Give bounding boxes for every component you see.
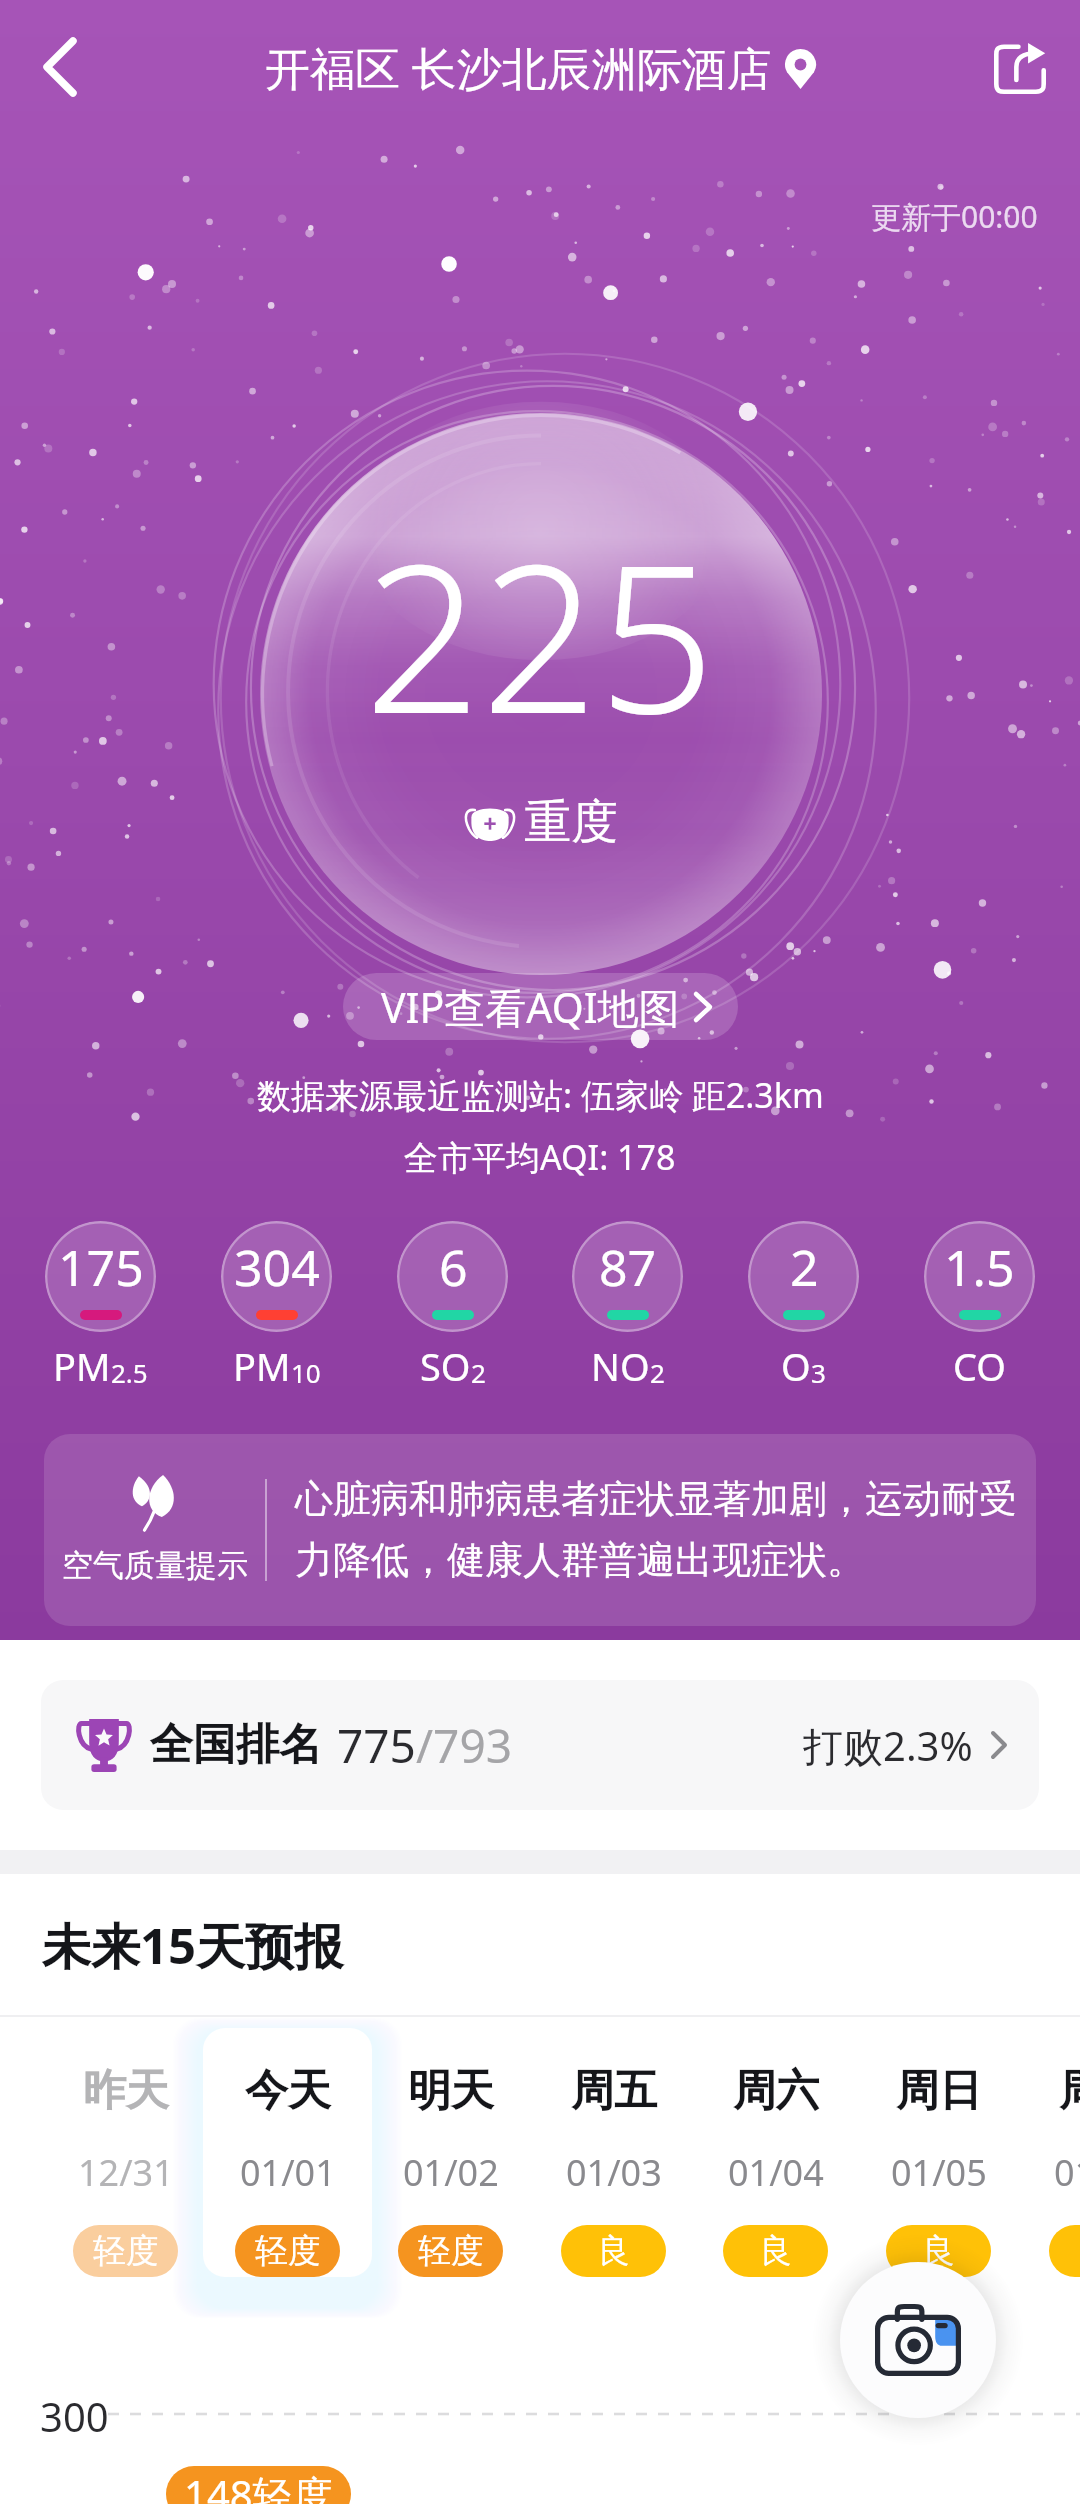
staticText: CO — [953, 1340, 1006, 1392]
staticText: 148轻度 — [184, 2467, 333, 2504]
button[interactable]: 周一 — [1017, 2028, 1080, 2277]
staticText: 01/02 — [403, 2148, 499, 2197]
staticText: 更新于00:00 — [871, 196, 1038, 237]
button[interactable]: 昨天 — [41, 2028, 210, 2277]
staticText: VIP查看AQI地图 — [381, 979, 680, 1035]
staticText: 2 — [471, 1355, 486, 1390]
staticText: 225 — [364, 494, 716, 773]
staticText: 今天 — [245, 2064, 331, 2118]
button[interactable]: Share — [960, 0, 1080, 134]
staticText: 空气质量提示 — [62, 1546, 248, 1585]
staticText: 01/05 — [891, 2148, 987, 2197]
staticText: 01/06 — [1054, 2148, 1080, 2197]
button[interactable]: 空气质量提示 — [44, 1434, 1036, 1626]
staticText: 未来15天预报 — [42, 1912, 344, 1979]
staticText: 周一 — [1059, 2064, 1080, 2118]
staticText: /793 — [416, 1714, 513, 1777]
button[interactable]: 今天 — [203, 2028, 372, 2277]
staticText: 2.5 — [111, 1355, 148, 1390]
staticText: 3 — [811, 1355, 826, 1390]
staticText: 304 — [234, 1233, 320, 1301]
staticText: 87 — [599, 1233, 657, 1301]
staticText: 周六 — [733, 2064, 819, 2118]
staticText: 01/03 — [566, 2148, 662, 2197]
staticText: 重度 — [524, 793, 618, 852]
staticText: 2 — [790, 1233, 819, 1301]
staticText: 明天 — [408, 2064, 494, 2118]
staticText: 打败2.3% — [803, 1718, 973, 1773]
staticText: 01/04 — [728, 2148, 824, 2197]
staticText: 周日 — [896, 2064, 982, 2118]
staticText: 心脏病和肺病患者症状显著加剧，运动耐受力降低，健康人群普遍出现症状。 — [295, 1475, 1036, 1585]
staticText: 轻度 — [93, 2230, 159, 2272]
staticText: 全国排名 — [150, 1718, 322, 1772]
staticText: 01/01 — [240, 2148, 336, 2197]
staticText: 开福区 长沙北辰洲际酒店 — [265, 37, 772, 98]
staticText: 轻度 — [418, 2230, 484, 2272]
staticText: 良 — [759, 2230, 792, 2272]
staticText: 良 — [597, 2230, 630, 2272]
staticText: SO — [420, 1340, 471, 1392]
staticText: 2 — [650, 1355, 665, 1390]
button[interactable]: Back — [0, 0, 120, 134]
button[interactable]: 周五 — [529, 2028, 698, 2277]
staticText: 周五 — [571, 2064, 657, 2118]
staticText: 轻度 — [255, 2230, 321, 2272]
staticText: 数据来源最近监测站: 伍家岭 距2.3km — [257, 1072, 824, 1118]
staticText: 良 — [922, 2230, 955, 2272]
button[interactable]: 周六 — [691, 2028, 860, 2277]
staticText: 1.5 — [944, 1233, 1015, 1301]
button[interactable]: Camera — [840, 2262, 996, 2418]
staticText: 300 — [40, 2389, 109, 2443]
staticText: 12/31 — [78, 2148, 174, 2197]
staticText: 175 — [58, 1233, 144, 1301]
staticText: NO — [591, 1340, 650, 1392]
staticText: PM — [53, 1340, 111, 1392]
button[interactable]: 全国排名 — [41, 1680, 1039, 1810]
staticText: O — [781, 1340, 811, 1392]
staticText: 775 — [337, 1714, 416, 1777]
staticText: 6 — [439, 1233, 468, 1301]
button[interactable]: 明天 — [366, 2028, 535, 2277]
staticText: 全市平均AQI: 178 — [404, 1134, 676, 1180]
staticText: 昨天 — [83, 2064, 169, 2118]
staticText: PM — [233, 1340, 291, 1392]
button[interactable]: 周日 — [854, 2028, 1023, 2277]
button[interactable]: VIP查看AQI地图 — [343, 973, 738, 1040]
staticText: 10 — [291, 1355, 321, 1390]
